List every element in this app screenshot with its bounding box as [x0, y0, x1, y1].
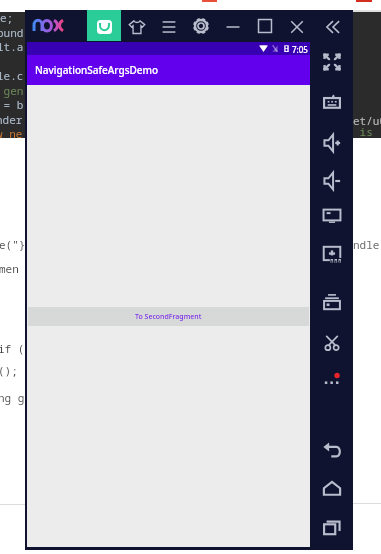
button[interactable]: Close — [284, 11, 310, 42]
staticText: To SecondFragment — [135, 312, 202, 322]
button[interactable]: Volume down — [311, 168, 353, 194]
staticText: ng g — [0, 390, 25, 405]
button[interactable]: Install APK — [311, 241, 353, 267]
button[interactable]: Maximize — [252, 10, 278, 41]
button[interactable]: Nox — [29, 12, 67, 38]
button[interactable]: Volume up — [311, 130, 353, 156]
button[interactable]: Menu — [156, 11, 182, 42]
button[interactable]: Recents — [311, 514, 353, 540]
button[interactable]: To SecondFragment — [28, 307, 309, 326]
staticText: (); in — [0, 363, 38, 378]
button[interactable]: Collapse — [320, 11, 346, 42]
staticText: 7:05 — [292, 44, 308, 55]
staticText: e; — [0, 10, 14, 25]
staticText: men — [0, 261, 19, 276]
button[interactable]: Screenshot — [311, 202, 353, 228]
button[interactable]: Fullscreen — [311, 49, 353, 75]
staticText: if (b — [0, 341, 31, 356]
button[interactable]: Home — [311, 476, 353, 502]
button[interactable]: Keyboard — [311, 89, 353, 115]
staticText: le.c — [0, 68, 24, 83]
button[interactable]: Theme — [124, 11, 150, 42]
button[interactable]: App tab — [87, 10, 121, 41]
staticText: = b — [0, 97, 24, 112]
staticText: ndle — [353, 237, 380, 252]
staticText: gen — [0, 83, 24, 98]
button[interactable]: More — [311, 367, 353, 393]
button[interactable]: Back — [311, 437, 353, 463]
staticText: is — [353, 124, 373, 139]
button[interactable]: Record — [311, 289, 353, 315]
staticText: et/u0 — [353, 113, 381, 128]
staticText: lt.a — [0, 39, 24, 54]
staticText: nder — [0, 112, 23, 127]
staticText: e("} — [0, 237, 26, 252]
button[interactable]: Cut — [311, 330, 353, 356]
button[interactable]: Settings — [188, 10, 214, 41]
staticText: bund — [0, 25, 24, 40]
button[interactable]: Minimize — [220, 11, 246, 42]
staticText: NavigationSafeArgsDemo — [35, 63, 159, 77]
staticText: w ne — [0, 126, 23, 141]
